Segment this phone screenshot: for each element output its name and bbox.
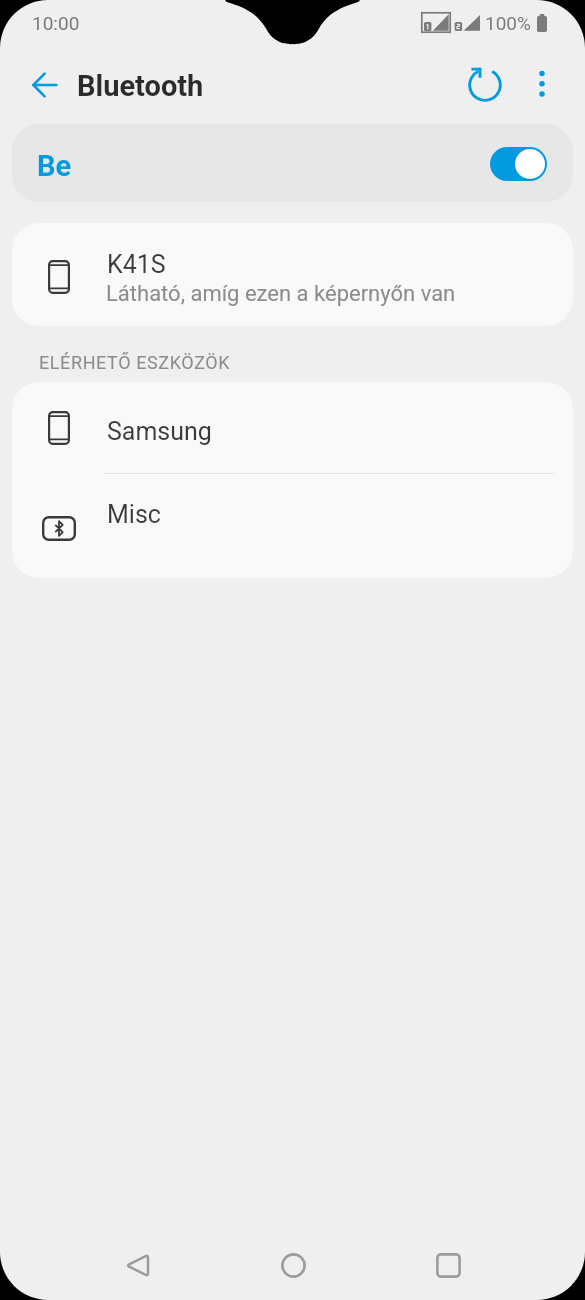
button[interactable]: Be xyxy=(12,124,573,202)
button[interactable]: Misc xyxy=(12,474,573,578)
staticText: 100% xyxy=(485,12,531,34)
staticText: ELÉRHETŐ ESZKÖZÖK xyxy=(39,352,231,373)
button[interactable]: K41S xyxy=(12,223,573,326)
button[interactable]: Home xyxy=(262,1234,324,1296)
staticText: Be xyxy=(37,149,72,183)
button[interactable]: More options xyxy=(518,61,566,109)
button[interactable]: Back xyxy=(20,61,68,109)
button[interactable]: Samsung xyxy=(12,382,573,474)
staticText: Misc xyxy=(107,500,161,529)
staticText: K41S xyxy=(107,250,166,279)
staticText: Bluetooth xyxy=(77,69,204,103)
button[interactable]: Bluetooth on xyxy=(490,147,547,181)
button[interactable]: Refresh xyxy=(459,59,511,111)
staticText: 10:00 xyxy=(32,12,80,34)
button[interactable]: Recents xyxy=(417,1234,479,1296)
staticText: Látható, amíg ezen a képernyőn van xyxy=(106,281,456,307)
button[interactable]: Back xyxy=(106,1234,168,1296)
staticText: Samsung xyxy=(107,417,212,446)
